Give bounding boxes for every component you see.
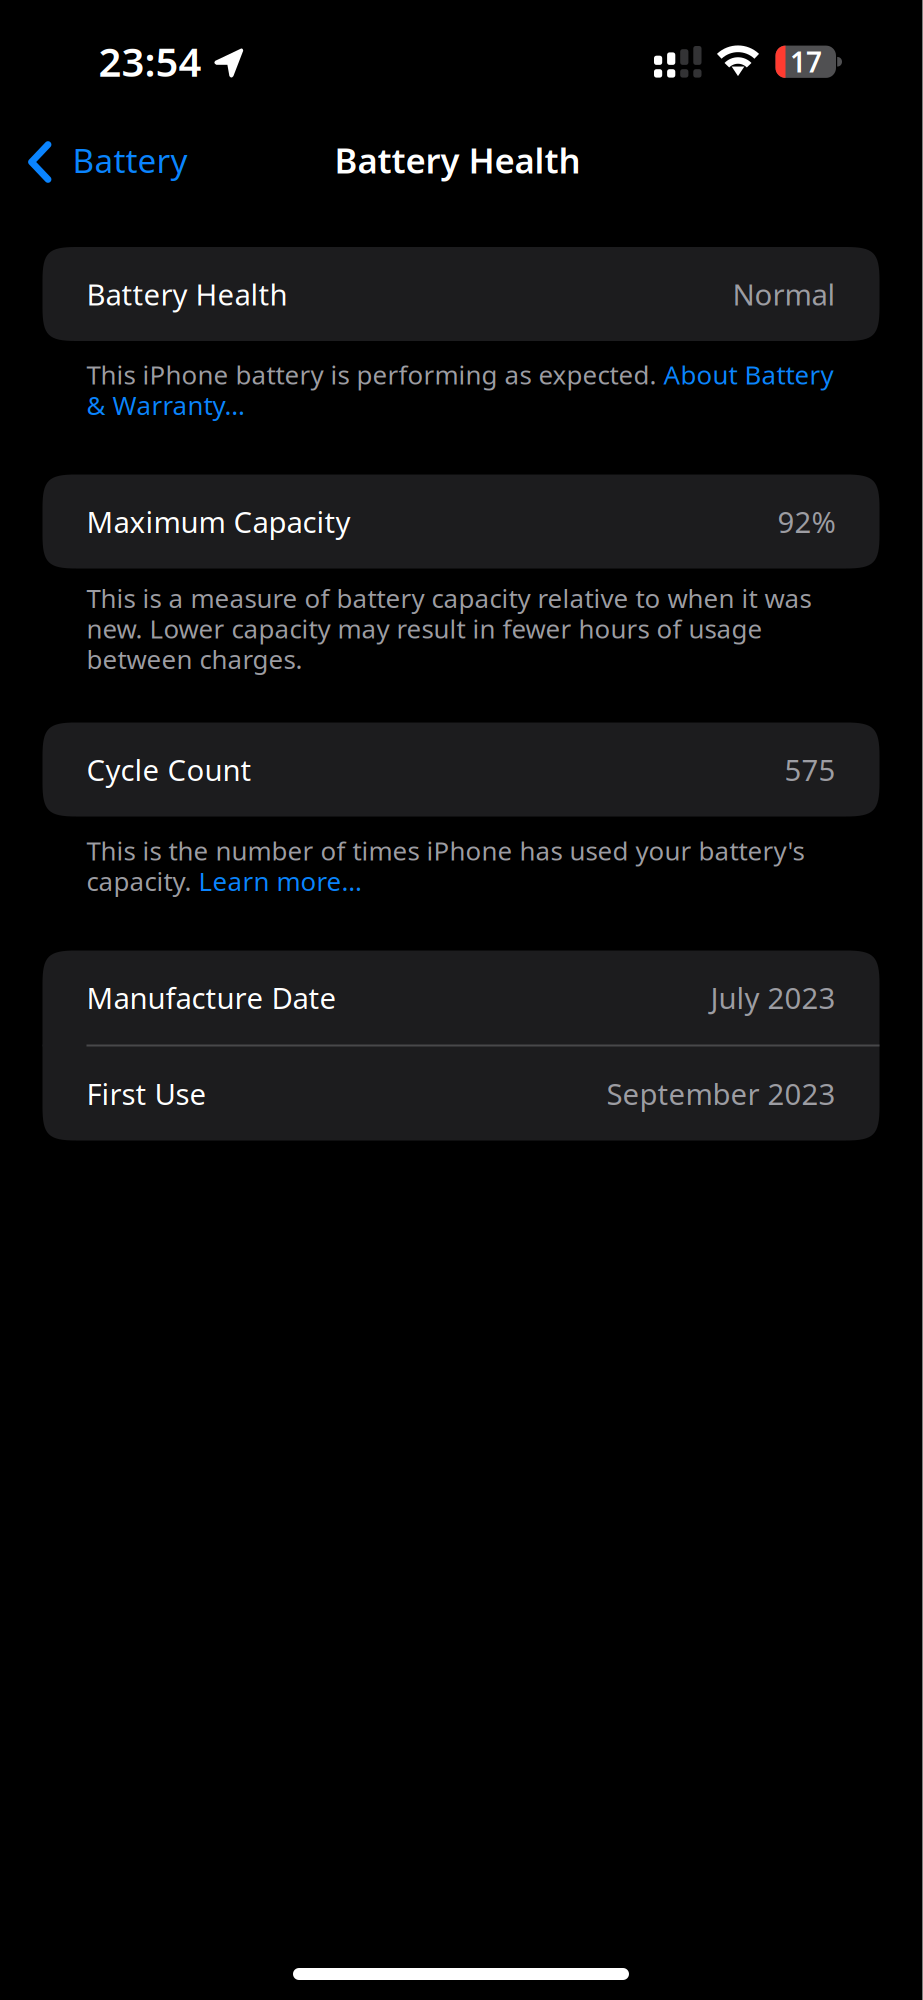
button[interactable]: About Battery: [663, 359, 833, 390]
staticText: Normal: [732, 274, 835, 314]
staticText: 92%: [777, 501, 835, 541]
staticText: Maximum Capacity: [86, 501, 350, 541]
staticText: July 2023: [710, 977, 835, 1017]
staticText: between charges.: [86, 644, 302, 674]
staticText: 575: [784, 749, 835, 789]
staticText: Battery Health: [86, 274, 287, 314]
button[interactable]: & Warranty…: [86, 390, 244, 420]
staticText: & Warranty…: [86, 390, 244, 420]
staticText: 23:54: [98, 34, 201, 88]
button[interactable]: First Use: [42, 1046, 879, 1140]
staticText: About Battery: [663, 359, 833, 390]
button[interactable]: Learn more…: [198, 866, 361, 896]
staticText: capacity.: [86, 866, 198, 896]
staticText: Cycle Count: [86, 749, 251, 789]
staticText: Learn more…: [198, 866, 361, 896]
staticText: Battery Health: [334, 136, 580, 184]
button[interactable]: Cycle Count: [42, 722, 879, 816]
staticText: This is a measure of battery capacity re…: [86, 583, 811, 613]
staticText: new. Lower capacity may result in fewer …: [86, 613, 762, 644]
staticText: Manufacture Date: [86, 977, 336, 1017]
button[interactable]: Battery Health: [42, 247, 879, 341]
button[interactable]: Battery: [0, 134, 209, 190]
button[interactable]: Maximum Capacity: [42, 474, 879, 568]
staticText: First Use: [86, 1073, 206, 1113]
staticText: September 2023: [606, 1073, 835, 1113]
staticText: This iPhone battery is performing as exp…: [86, 359, 663, 390]
staticText: This is the number of times iPhone has u…: [86, 835, 804, 866]
button[interactable]: Manufacture Date: [42, 950, 879, 1044]
staticText: 17: [790, 43, 822, 81]
staticText: Battery: [72, 137, 187, 183]
